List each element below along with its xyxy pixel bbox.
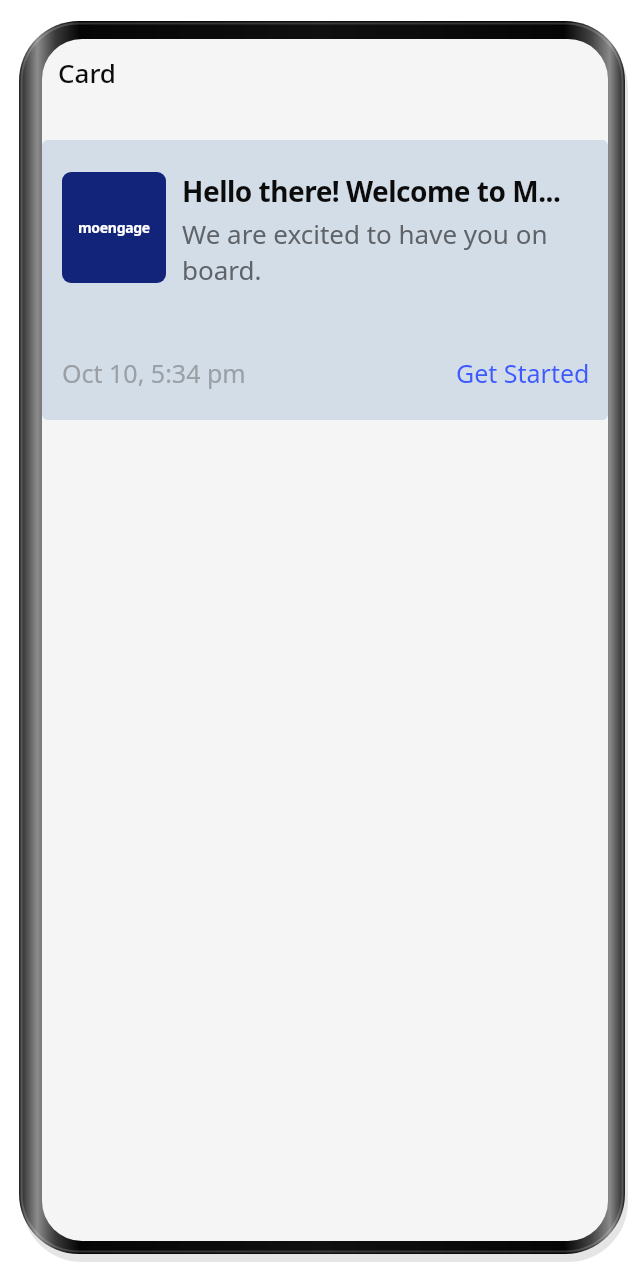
- staticText: Oct 10, 5:34 pm: [62, 356, 246, 390]
- staticText: Get Started: [456, 356, 590, 390]
- staticText: moengage: [78, 218, 150, 237]
- button[interactable]: moengage: [42, 140, 608, 420]
- staticText: We are excited to have you on board.: [182, 216, 600, 288]
- staticText: Card: [58, 55, 116, 90]
- button[interactable]: Get Started: [454, 354, 592, 392]
- staticText: Hello there! Welcome to M...: [182, 172, 561, 210]
